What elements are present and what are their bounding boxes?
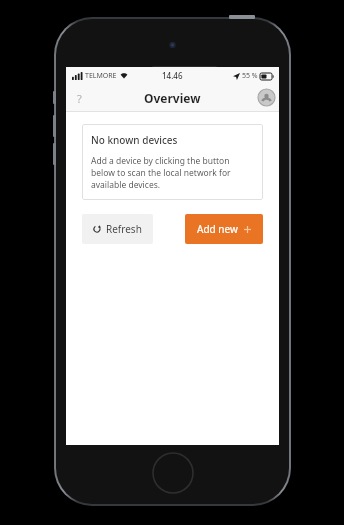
staticText: No known devices: [91, 133, 178, 147]
staticText: TELMORE: [85, 71, 117, 81]
button[interactable]: Help: [68, 87, 90, 109]
staticText: Refresh: [106, 222, 142, 236]
staticText: 14.46: [162, 70, 183, 81]
button[interactable]: Account: [258, 89, 275, 106]
staticText: Overview: [144, 90, 201, 106]
staticText: 55 %: [242, 71, 258, 81]
button[interactable]: Add new: [185, 214, 263, 244]
button[interactable]: Refresh: [82, 214, 153, 244]
button[interactable]: No known devices: [82, 124, 263, 200]
staticText: Add new: [197, 222, 238, 236]
staticText: Add a device by clicking the button belo…: [91, 155, 254, 191]
staticText: ?: [77, 91, 82, 106]
